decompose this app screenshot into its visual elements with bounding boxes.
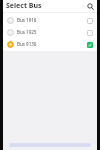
staticText: Bus 1925 — [17, 29, 37, 35]
button[interactable]: Bus 1925 — [3, 26, 97, 38]
staticText: Bus 1916 — [17, 17, 37, 23]
button[interactable]: Bus 1916 — [3, 14, 97, 26]
staticText: Select Bus — [6, 1, 42, 11]
staticText: Bus 9130 — [17, 41, 37, 47]
button[interactable]: Not selected — [86, 29, 93, 36]
button[interactable]: Bus 9130 — [3, 38, 97, 50]
button[interactable]: Search — [85, 1, 95, 11]
button[interactable]: Selected — [86, 41, 93, 48]
button[interactable]: Not selected — [86, 17, 93, 24]
